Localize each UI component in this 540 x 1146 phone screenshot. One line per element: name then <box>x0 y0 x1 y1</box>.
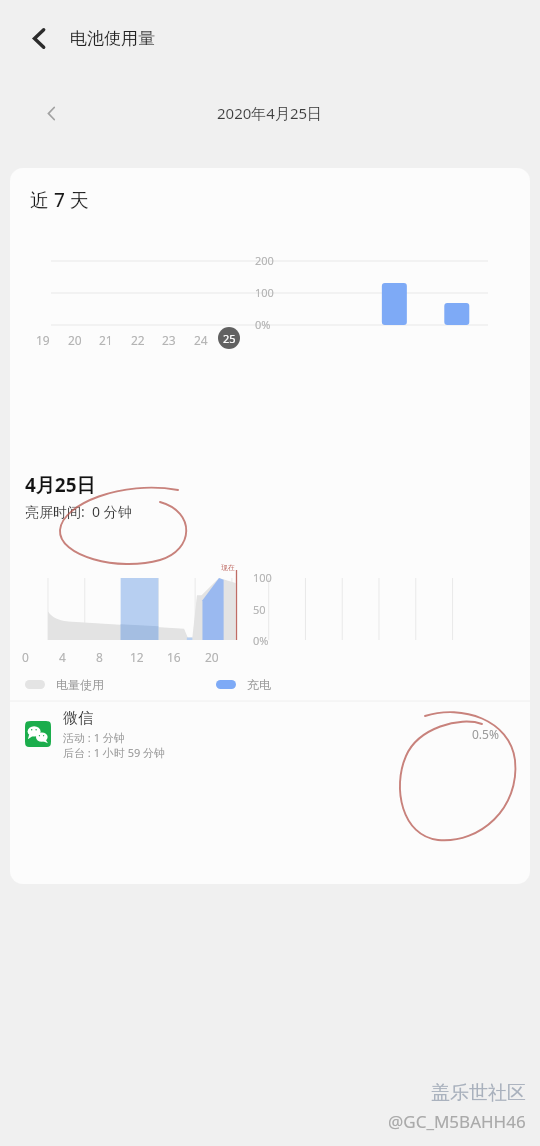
staticText: 充电 <box>247 677 271 692</box>
staticText: 8 <box>96 649 103 665</box>
staticText: 近 7 天 <box>30 187 89 213</box>
staticText: 50 <box>253 602 266 617</box>
staticText: 24 <box>194 332 208 348</box>
staticText: 19 <box>36 332 50 348</box>
staticText: 微信 <box>63 709 93 728</box>
staticText: 21 <box>99 332 113 348</box>
button[interactable]: Back <box>16 15 62 61</box>
staticText: 现在 <box>221 563 235 572</box>
button[interactable]: 微信 <box>10 701 530 767</box>
staticText: 盖乐世社区 <box>431 1081 526 1105</box>
staticText: 后台 : 1 小时 59 分钟 <box>63 745 166 760</box>
staticText: 0.5% <box>472 726 499 742</box>
staticText: 23 <box>162 332 176 348</box>
staticText: 16 <box>167 649 181 665</box>
staticText: 20 <box>205 649 219 665</box>
staticText: 4月25日 <box>25 472 96 498</box>
staticText: 22 <box>131 332 145 348</box>
staticText: 20 <box>68 332 82 348</box>
staticText: 2020年4月25日 <box>217 103 323 123</box>
staticText: 0% <box>255 317 271 332</box>
staticText: @GC_M5BAHH46 <box>388 1110 526 1133</box>
staticText: 电量使用 <box>56 677 104 692</box>
staticText: 100 <box>253 570 272 585</box>
staticText: 25 <box>223 331 236 346</box>
staticText: 0 <box>22 649 29 665</box>
staticText: 200 <box>255 253 274 268</box>
staticText: 电池使用量 <box>70 28 155 49</box>
button[interactable]: 25 <box>218 327 240 349</box>
staticText: 4 <box>59 649 66 665</box>
staticText: 亮屏时间: 0 分钟 <box>25 502 132 521</box>
button[interactable]: Previous day <box>31 93 71 133</box>
staticText: 0% <box>253 633 269 648</box>
staticText: 12 <box>130 649 144 665</box>
staticText: 活动 : 1 分钟 <box>63 730 125 745</box>
staticText: 100 <box>255 285 274 300</box>
